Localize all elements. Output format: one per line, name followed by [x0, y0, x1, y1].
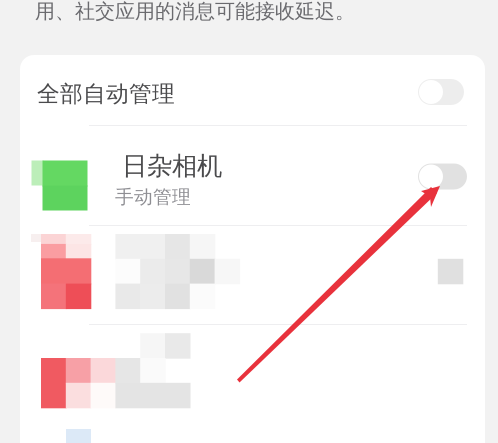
button[interactable]: 全部自动管理	[20, 55, 485, 125]
staticText: 全部自动管理	[37, 80, 175, 108]
staticText: 用、社交应用的消息可能接收延迟。	[35, 0, 355, 24]
staticText: 手动管理	[115, 186, 191, 208]
staticText: 日杂相机	[122, 150, 222, 182]
button[interactable]: 日杂相机	[20, 126, 485, 225]
